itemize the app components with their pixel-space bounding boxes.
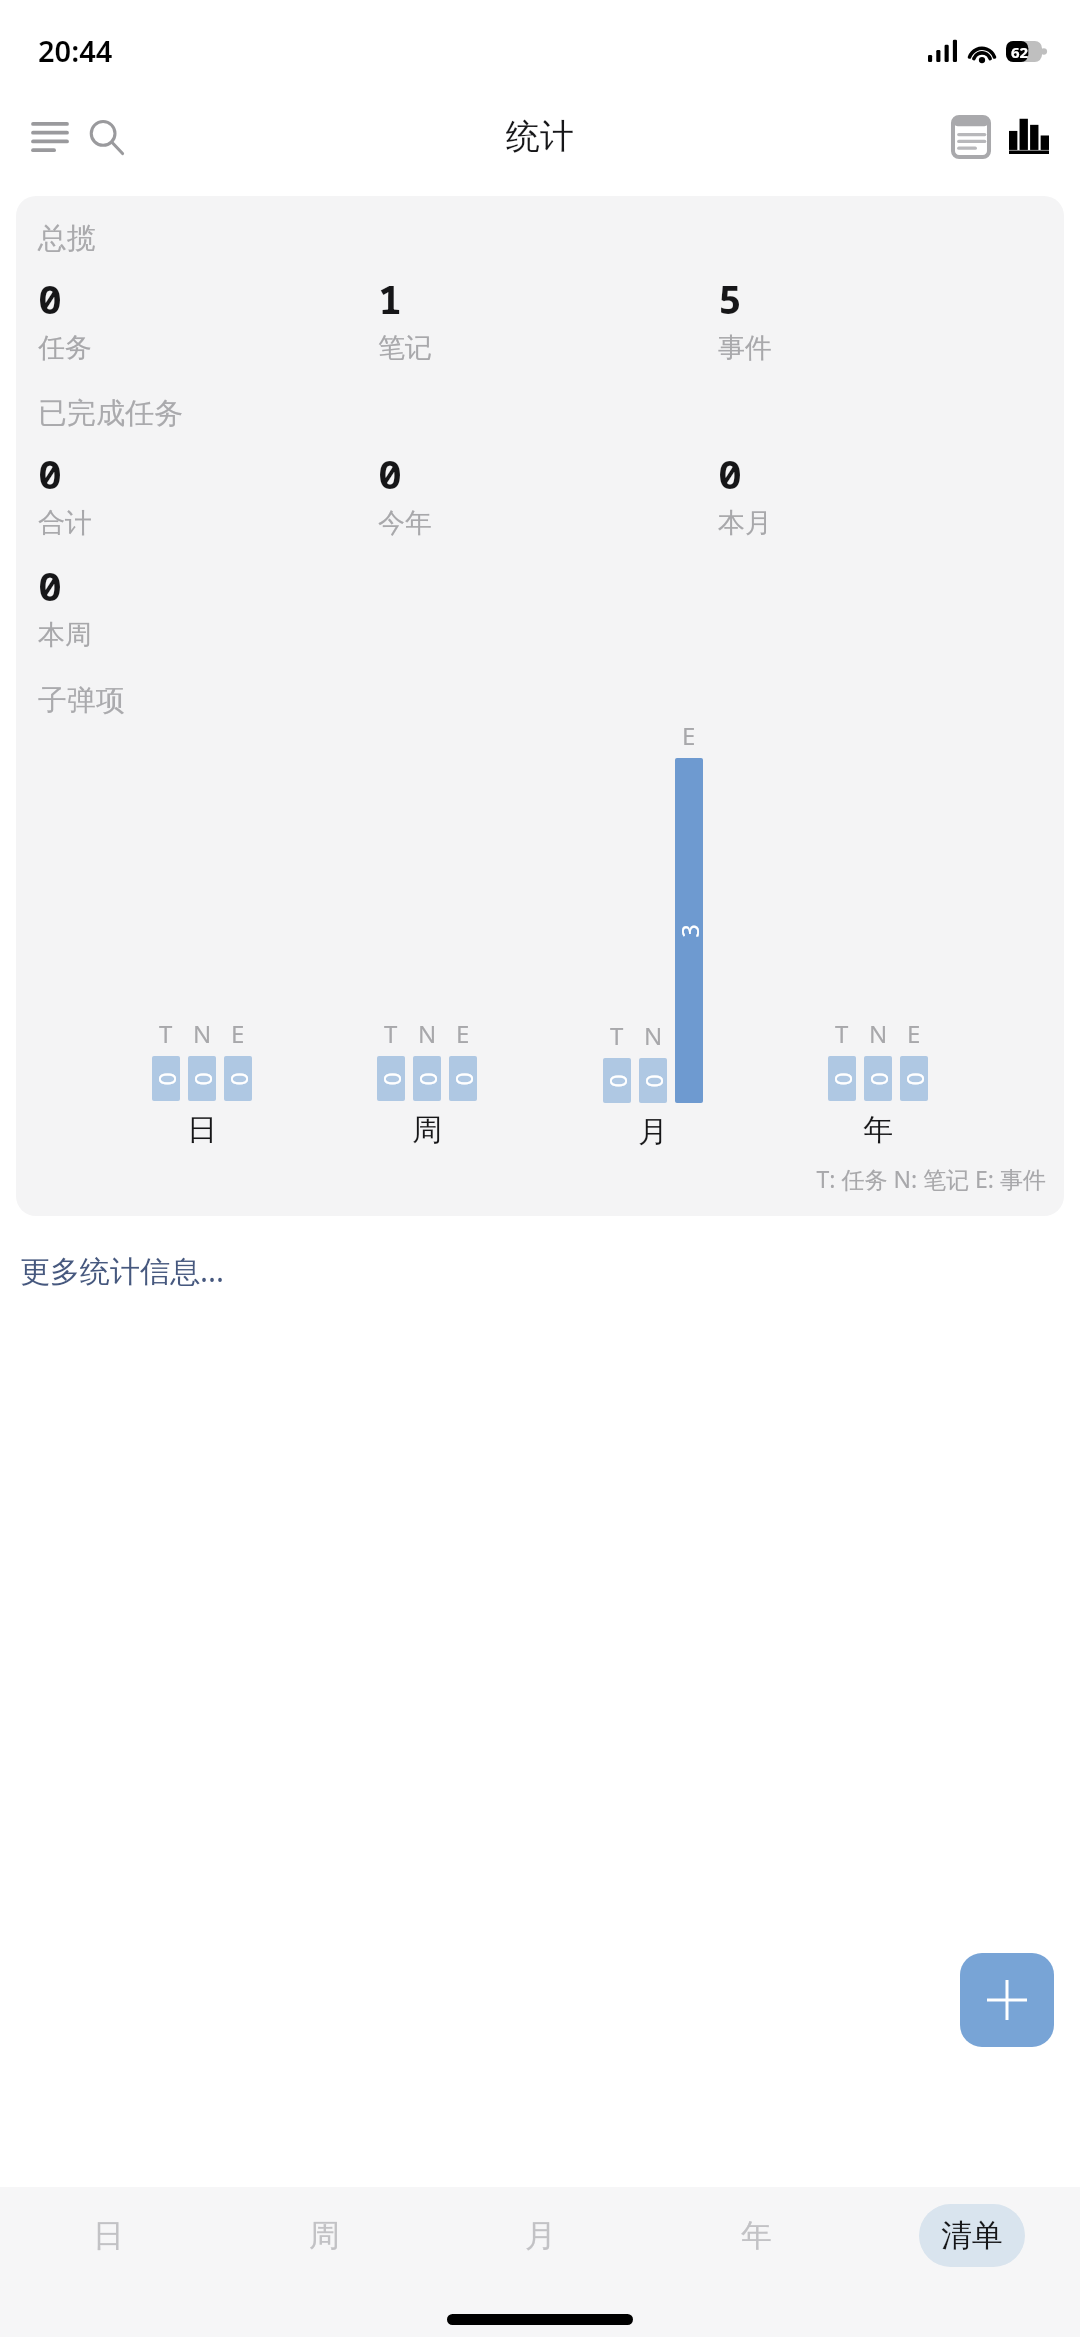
button[interactable]: 0 xyxy=(864,1056,892,1101)
staticText: N xyxy=(418,1017,437,1050)
staticText: 统计 xyxy=(506,115,574,158)
staticText: E xyxy=(456,1017,470,1050)
button[interactable]: 0 xyxy=(900,1056,928,1101)
staticText: 0 xyxy=(38,446,62,500)
button[interactable]: 清单 xyxy=(919,2204,1025,2267)
button[interactable]: 0 xyxy=(449,1056,477,1101)
button[interactable]: 3 xyxy=(675,758,703,1103)
button[interactable]: 日 xyxy=(0,2195,216,2275)
button[interactable]: 更多统计信息... xyxy=(0,1244,1080,1297)
button[interactable]: 0 xyxy=(377,1056,405,1101)
button[interactable]: 总揽 xyxy=(16,196,1064,1216)
staticText: 0 xyxy=(188,1071,216,1085)
staticText: 20:44 xyxy=(38,31,113,70)
staticText: 已完成任务 xyxy=(38,395,183,432)
button[interactable]: 0 xyxy=(413,1056,441,1101)
button[interactable]: Notes xyxy=(942,108,1000,166)
staticText: N xyxy=(869,1017,888,1050)
staticText: 月 xyxy=(525,2216,556,2255)
staticText: 日 xyxy=(187,1111,217,1149)
staticText: 0 xyxy=(718,446,742,500)
staticText: 0 xyxy=(224,1071,252,1085)
button[interactable]: 0 xyxy=(188,1056,216,1101)
staticText: 年 xyxy=(741,2216,772,2255)
staticText: N xyxy=(644,1019,663,1052)
button[interactable]: 0 xyxy=(224,1056,252,1101)
button[interactable]: 0 xyxy=(639,1058,667,1103)
staticText: T xyxy=(159,1017,173,1050)
staticText: 清单 xyxy=(941,2216,1003,2255)
staticText: E xyxy=(231,1017,245,1050)
button[interactable]: 0 xyxy=(828,1056,856,1101)
staticText: 0 xyxy=(38,558,62,612)
button[interactable]: 月 xyxy=(432,2195,648,2275)
button[interactable]: Add xyxy=(960,1953,1054,2047)
staticText: 总揽 xyxy=(38,220,96,257)
staticText: T: 任务 N: 笔记 E: 事件 xyxy=(30,1163,1046,1194)
staticText: 0 xyxy=(828,1071,856,1085)
button[interactable]: Sort xyxy=(22,109,78,165)
staticText: 0 xyxy=(377,1071,405,1085)
staticText: 月 xyxy=(638,1113,668,1149)
staticText: 5 xyxy=(718,271,742,325)
staticText: 0 xyxy=(38,271,62,325)
staticText: 事件 xyxy=(718,331,772,365)
staticText: 本月 xyxy=(718,506,772,540)
staticText: 年 xyxy=(863,1111,893,1149)
staticText: E xyxy=(907,1017,921,1050)
staticText: 62 xyxy=(1011,42,1029,62)
staticText: 3 xyxy=(675,923,703,937)
staticText: 0 xyxy=(639,1073,667,1087)
staticText: 周 xyxy=(412,1111,442,1149)
staticText: T xyxy=(384,1017,398,1050)
staticText: 今年 xyxy=(378,506,432,540)
staticText: N xyxy=(193,1017,212,1050)
staticText: 任务 xyxy=(38,331,92,365)
staticText: T xyxy=(835,1017,849,1050)
staticText: 0 xyxy=(413,1071,441,1085)
button[interactable]: 0 xyxy=(603,1058,631,1103)
staticText: 笔记 xyxy=(378,331,432,365)
staticText: 0 xyxy=(152,1071,180,1085)
staticText: 周 xyxy=(309,2216,340,2255)
staticText: E xyxy=(682,719,696,752)
staticText: 0 xyxy=(900,1071,928,1085)
button[interactable]: Search xyxy=(78,109,134,165)
staticText: 1 xyxy=(378,271,402,325)
button[interactable]: 周 xyxy=(216,2195,432,2275)
staticText: 0 xyxy=(864,1071,892,1085)
staticText: T xyxy=(610,1019,624,1052)
staticText: 本周 xyxy=(38,618,92,652)
button[interactable]: 0 xyxy=(152,1056,180,1101)
staticText: 0 xyxy=(378,446,402,500)
button[interactable]: 年 xyxy=(648,2195,864,2275)
staticText: 0 xyxy=(603,1073,631,1087)
staticText: 合计 xyxy=(38,506,92,540)
staticText: 更多统计信息... xyxy=(20,1250,225,1291)
staticText: 子弹项 xyxy=(38,682,125,719)
staticText: 0 xyxy=(449,1071,477,1085)
button[interactable]: Statistics xyxy=(1000,108,1058,166)
staticText: 日 xyxy=(93,2216,124,2255)
